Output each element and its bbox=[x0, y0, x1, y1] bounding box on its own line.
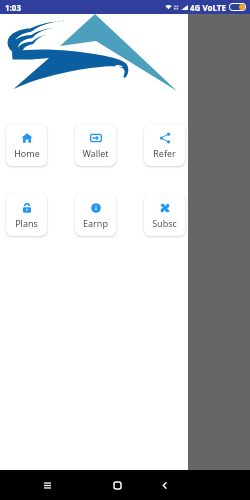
staticText: Home bbox=[14, 147, 40, 159]
staticText: Subsc bbox=[152, 217, 177, 229]
button[interactable]: Home bbox=[94, 470, 141, 500]
button[interactable]: Plans bbox=[6, 194, 47, 236]
button[interactable]: Back bbox=[141, 470, 188, 500]
button[interactable]: Earnp bbox=[75, 194, 116, 236]
button[interactable]: Wallet bbox=[75, 124, 116, 166]
button[interactable]: Refer bbox=[144, 124, 185, 166]
staticText: Plans bbox=[15, 217, 38, 229]
staticText: 1:03 bbox=[5, 2, 21, 13]
staticText: Wallet bbox=[82, 147, 109, 159]
staticText: 4G VoLTE bbox=[190, 2, 226, 13]
button[interactable]: Home bbox=[6, 124, 47, 166]
button[interactable]: Recent apps bbox=[0, 470, 94, 500]
staticText: Earnp bbox=[83, 217, 108, 229]
staticText: Refer bbox=[153, 147, 176, 159]
button[interactable]: Subsc bbox=[144, 194, 185, 236]
